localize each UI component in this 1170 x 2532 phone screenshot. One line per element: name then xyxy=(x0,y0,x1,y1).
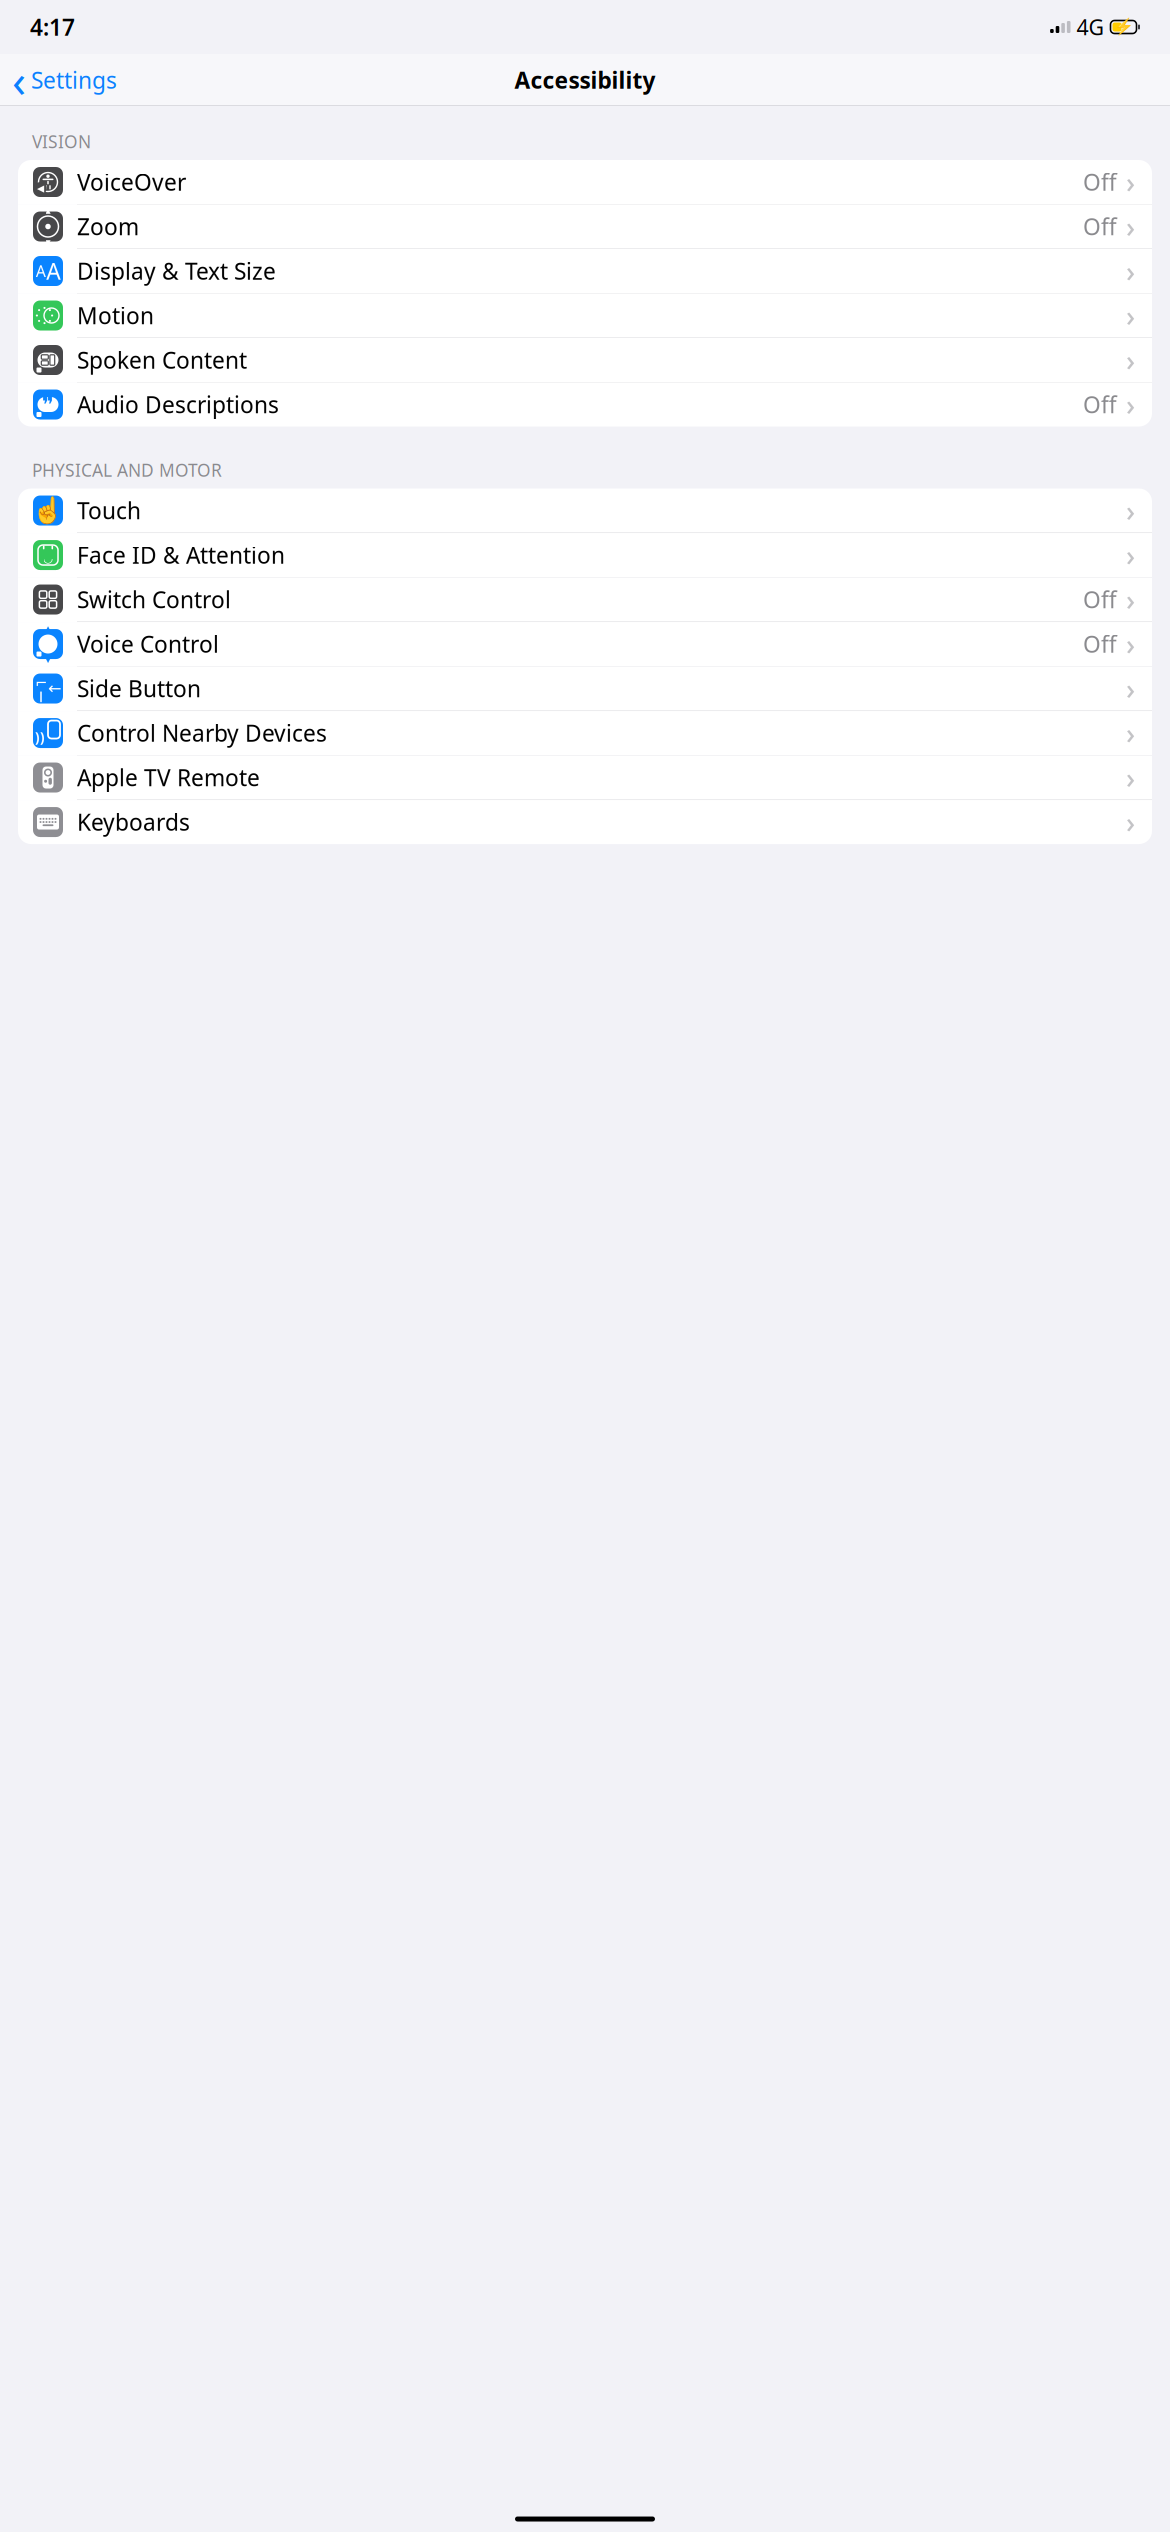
button[interactable]: Spoken Content xyxy=(18,338,1152,382)
staticText: › xyxy=(1126,714,1135,752)
staticText: Keyboards xyxy=(77,807,190,837)
staticText: › xyxy=(1126,297,1135,334)
staticText: ▲ xyxy=(45,624,50,632)
button[interactable]: Apple TV Remote xyxy=(18,755,1152,800)
staticText: ‹ xyxy=(12,50,26,110)
staticText: 4:17 xyxy=(30,12,75,42)
button[interactable]: ⌐ xyxy=(18,666,1152,711)
button[interactable]: Motion xyxy=(18,293,1152,338)
staticText: Audio Descriptions xyxy=(77,389,279,420)
staticText: › xyxy=(1126,252,1135,290)
staticText: A xyxy=(36,260,46,282)
staticText: 4G xyxy=(1076,13,1104,41)
button[interactable]: ☝ xyxy=(18,488,1152,533)
staticText: Display & Text Size xyxy=(77,256,276,286)
staticText: Switch Control xyxy=(77,584,231,615)
staticText: ◀ xyxy=(37,183,44,194)
staticText: ☝ xyxy=(32,496,64,525)
staticText: Off xyxy=(1083,629,1117,659)
staticText: ▼ xyxy=(45,238,50,246)
staticText: ← xyxy=(48,679,61,698)
staticText: Face ID & Attention xyxy=(77,540,285,570)
staticText: Off xyxy=(1083,211,1117,242)
staticText: VoiceOver xyxy=(77,167,186,197)
staticText: Settings xyxy=(31,65,117,95)
staticText: ❞ xyxy=(42,393,54,416)
staticText: Off xyxy=(1083,389,1117,420)
staticText: Apple TV Remote xyxy=(77,762,260,793)
staticText: ⚡ xyxy=(1113,18,1133,36)
button[interactable]: Keyboards xyxy=(18,800,1152,844)
staticText: › xyxy=(1126,803,1135,841)
staticText: › xyxy=(1126,625,1135,663)
staticText: PHYSICAL AND MOTOR xyxy=(32,458,222,481)
button[interactable]: ‹ xyxy=(4,58,125,102)
staticText: Accessibility xyxy=(514,65,655,95)
staticText: Side Button xyxy=(77,673,201,704)
staticText: ▼ xyxy=(45,656,50,664)
staticText: VISION xyxy=(32,130,91,153)
staticText: › xyxy=(1126,536,1135,574)
staticText: A xyxy=(46,256,60,286)
staticText: Off xyxy=(1083,167,1117,197)
button[interactable]: ◡ xyxy=(18,533,1152,577)
button[interactable]: ▲ xyxy=(18,622,1152,666)
staticText: Spoken Content xyxy=(77,345,247,375)
staticText: › xyxy=(1126,341,1135,379)
button[interactable]: )) xyxy=(18,711,1152,755)
staticText: › xyxy=(1126,759,1135,796)
staticText: )) xyxy=(35,728,45,746)
staticText: › xyxy=(1126,581,1135,618)
staticText: › xyxy=(1126,386,1135,423)
staticText: › xyxy=(1126,670,1135,707)
button[interactable]: ▲ xyxy=(18,204,1152,249)
staticText: ⌐ xyxy=(35,675,47,691)
button[interactable]: A xyxy=(18,249,1152,293)
staticText: › xyxy=(1126,208,1135,245)
staticText: Control Nearby Devices xyxy=(77,718,327,748)
staticText: Zoom xyxy=(77,211,139,242)
staticText: Motion xyxy=(77,300,154,331)
button[interactable]: Switch Control xyxy=(18,577,1152,622)
button[interactable]: ❞ xyxy=(18,382,1152,426)
button[interactable]: ◀ xyxy=(18,160,1152,204)
staticText: ◡ xyxy=(43,551,52,565)
staticText: Touch xyxy=(77,495,141,526)
staticText: › xyxy=(1126,163,1135,201)
staticText: Voice Control xyxy=(77,629,219,659)
staticText: ▲ xyxy=(45,207,50,215)
staticText: › xyxy=(1126,492,1135,529)
staticText: Off xyxy=(1083,584,1117,615)
